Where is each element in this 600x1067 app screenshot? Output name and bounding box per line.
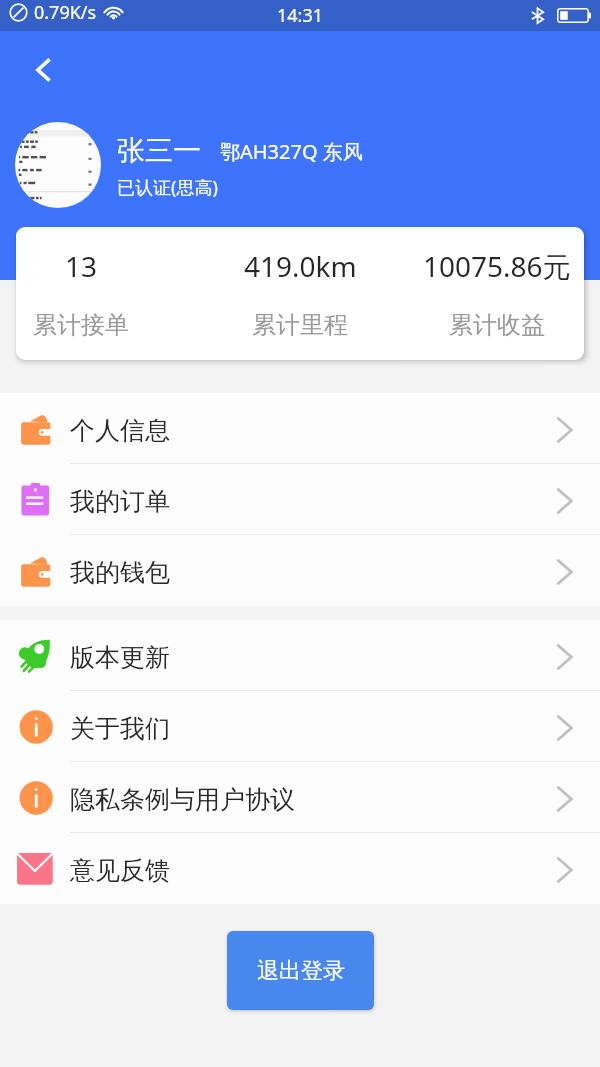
- staticText: 10075.86元: [423, 247, 571, 285]
- staticText: 已认证(思高): [117, 175, 218, 200]
- button[interactable]: 意见反馈: [0, 833, 600, 904]
- staticText: 0.79K/s: [34, 0, 97, 25]
- staticText: 版本更新: [70, 642, 170, 673]
- staticText: 退出登录: [257, 957, 345, 985]
- staticText: 鄂AH327Q 东风: [220, 138, 363, 165]
- staticText: 419.0km: [244, 247, 357, 285]
- staticText: 意见反馈: [70, 855, 170, 886]
- button[interactable]: Back: [12, 38, 76, 102]
- staticText: 我的钱包: [70, 557, 170, 588]
- staticText: 14:31: [277, 3, 324, 28]
- button[interactable]: 隐私条例与用户协议: [0, 762, 600, 833]
- staticText: 13: [65, 247, 98, 285]
- button[interactable]: 我的钱包: [0, 535, 600, 606]
- button[interactable]: 关于我们: [0, 691, 600, 762]
- staticText: 累计收益: [449, 310, 545, 340]
- staticText: 我的订单: [70, 486, 170, 517]
- button[interactable]: 我的订单: [0, 464, 600, 535]
- staticText: 张三一: [117, 133, 201, 168]
- button[interactable]: 退出登录: [227, 931, 374, 1010]
- staticText: 个人信息: [70, 415, 170, 446]
- staticText: 隐私条例与用户协议: [70, 784, 295, 815]
- button[interactable]: 版本更新: [0, 620, 600, 691]
- button[interactable]: 个人信息: [0, 393, 600, 464]
- staticText: 累计里程: [252, 310, 348, 340]
- staticText: 关于我们: [70, 713, 170, 744]
- staticText: 累计接单: [33, 310, 129, 340]
